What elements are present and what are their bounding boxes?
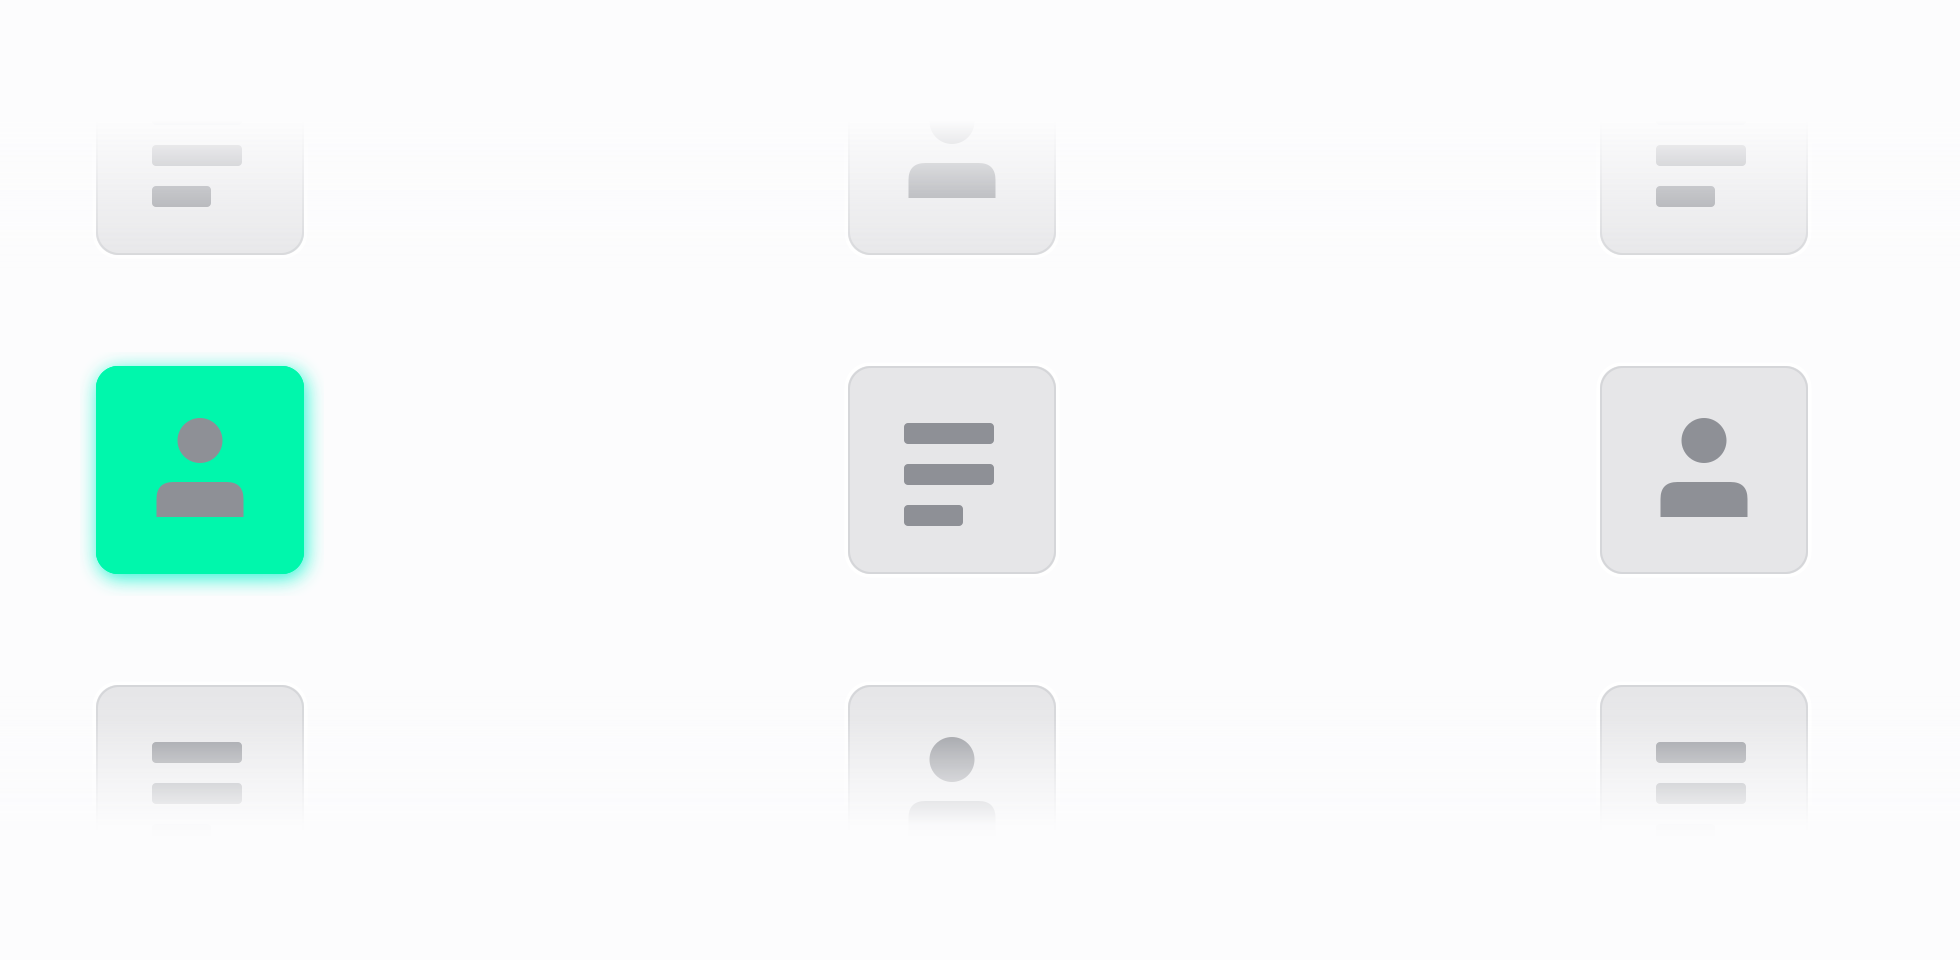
button[interactable]: Contact card bbox=[848, 47, 1056, 255]
button[interactable]: Note card bbox=[1600, 685, 1808, 893]
button[interactable]: Note card bbox=[96, 685, 304, 893]
button[interactable]: Selected contact card bbox=[96, 366, 304, 574]
button[interactable]: Contact card bbox=[1600, 366, 1808, 574]
button[interactable]: Contact card bbox=[848, 685, 1056, 893]
button[interactable]: Note card bbox=[848, 366, 1056, 574]
button[interactable]: Note card bbox=[96, 47, 304, 255]
button[interactable]: Note card bbox=[1600, 47, 1808, 255]
